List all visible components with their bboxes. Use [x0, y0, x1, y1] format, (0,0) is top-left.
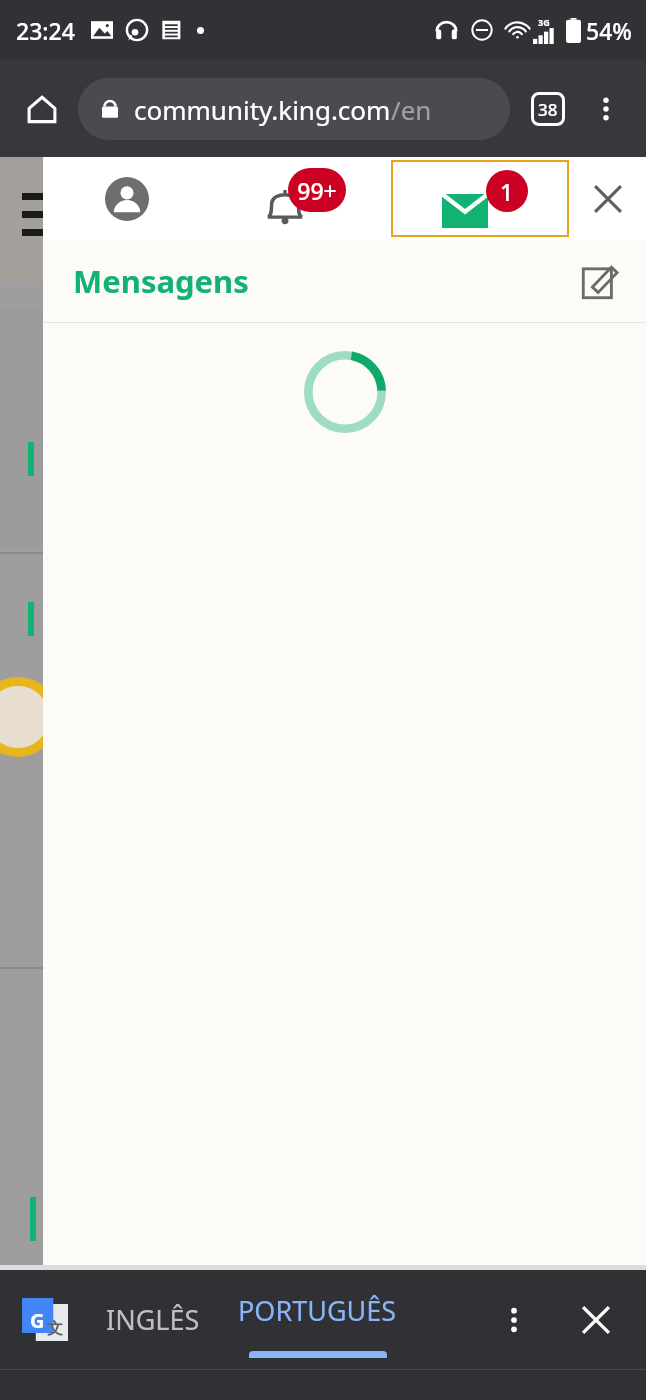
- button[interactable]: Messages: 1: [391, 160, 569, 237]
- staticText: G: [30, 1307, 45, 1334]
- staticText: 38: [538, 98, 558, 121]
- button[interactable]: Close: [570, 157, 646, 240]
- button[interactable]: Close translate bar: [566, 1290, 626, 1350]
- button[interactable]: Home: [14, 81, 70, 137]
- button[interactable]: PORTUGUÊS: [238, 1270, 397, 1369]
- staticText: 1: [500, 176, 514, 207]
- button[interactable]: Notifications: 99+: [211, 157, 391, 240]
- staticText: Mensagens: [73, 260, 249, 302]
- button[interactable]: community.king.com: [78, 78, 510, 140]
- button[interactable]: Compose message: [572, 253, 628, 309]
- staticText: INGLÊS: [106, 1301, 200, 1338]
- staticText: 23:24: [16, 15, 75, 46]
- staticText: 54%: [586, 15, 632, 46]
- staticText: PORTUGUÊS: [238, 1292, 397, 1329]
- staticText: community.king.com: [134, 92, 391, 127]
- button[interactable]: Profile: [43, 157, 211, 240]
- button[interactable]: Tabs: 38: [522, 83, 574, 135]
- button[interactable]: Menu: [22, 193, 58, 247]
- staticText: /en: [391, 92, 432, 127]
- staticText: 文: [47, 1319, 63, 1339]
- button[interactable]: Translate options: [484, 1290, 544, 1350]
- button[interactable]: INGLÊS: [106, 1270, 200, 1369]
- staticText: 3G: [538, 16, 550, 28]
- button[interactable]: More options: [580, 83, 632, 135]
- staticText: 99+: [297, 175, 337, 206]
